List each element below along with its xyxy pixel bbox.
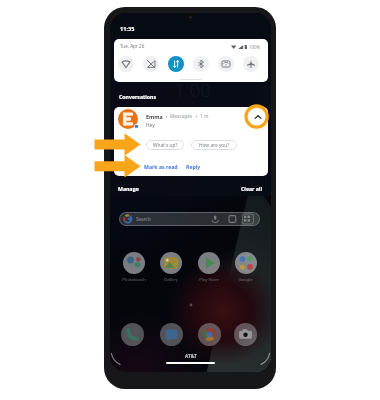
button[interactable]: Mark as read: [144, 163, 178, 170]
staticText: How are you?: [199, 142, 230, 149]
button[interactable]: Quick setting: [118, 56, 134, 72]
button[interactable]: Google: [229, 252, 262, 283]
button[interactable]: What's up?: [146, 140, 184, 150]
staticText: 1 m: [200, 113, 209, 120]
staticText: •: [163, 114, 170, 120]
button[interactable]: Camera: [234, 323, 257, 346]
button[interactable]: Conversations: [119, 93, 157, 100]
staticText: Emma: [146, 113, 163, 120]
button[interactable]: Quick setting: [218, 56, 234, 72]
staticText: Tue, Apr 26: [120, 43, 145, 49]
button[interactable]: Reply: [186, 163, 201, 170]
button[interactable]: Messages: [160, 323, 183, 346]
staticText: Search: [136, 216, 151, 222]
staticText: Play Store: [199, 277, 219, 283]
button[interactable]: Phone: [121, 323, 144, 346]
staticText: Google: [238, 277, 253, 283]
button[interactable]: Manage: [118, 185, 139, 192]
button[interactable]: Chrome: [198, 323, 221, 346]
button[interactable]: Quick setting: [168, 56, 184, 72]
staticText: •: [193, 114, 200, 120]
button[interactable]: Photobooth: [117, 252, 150, 283]
staticText: AT&T: [185, 353, 197, 360]
staticText: Messages: [170, 113, 193, 120]
button[interactable]: Quick setting: [243, 56, 259, 72]
staticText: 11:35: [120, 25, 135, 33]
staticText: Photobooth: [122, 277, 146, 283]
staticText: 100%: [249, 44, 261, 50]
button[interactable]: Quick setting: [193, 56, 209, 72]
staticText: Hey: [146, 122, 155, 129]
button[interactable]: Search: [119, 212, 260, 226]
button[interactable]: Gallery: [154, 252, 187, 283]
button[interactable]: Collapse: [248, 107, 268, 127]
button[interactable]: Clear all: [241, 185, 262, 192]
button[interactable]: Play Store: [192, 252, 225, 283]
staticText: Gallery: [164, 277, 178, 283]
button[interactable]: How are you?: [191, 140, 237, 150]
staticText: 1:00: [174, 77, 212, 103]
staticText: What's up?: [153, 142, 178, 149]
button[interactable]: Quick setting: [143, 56, 159, 72]
